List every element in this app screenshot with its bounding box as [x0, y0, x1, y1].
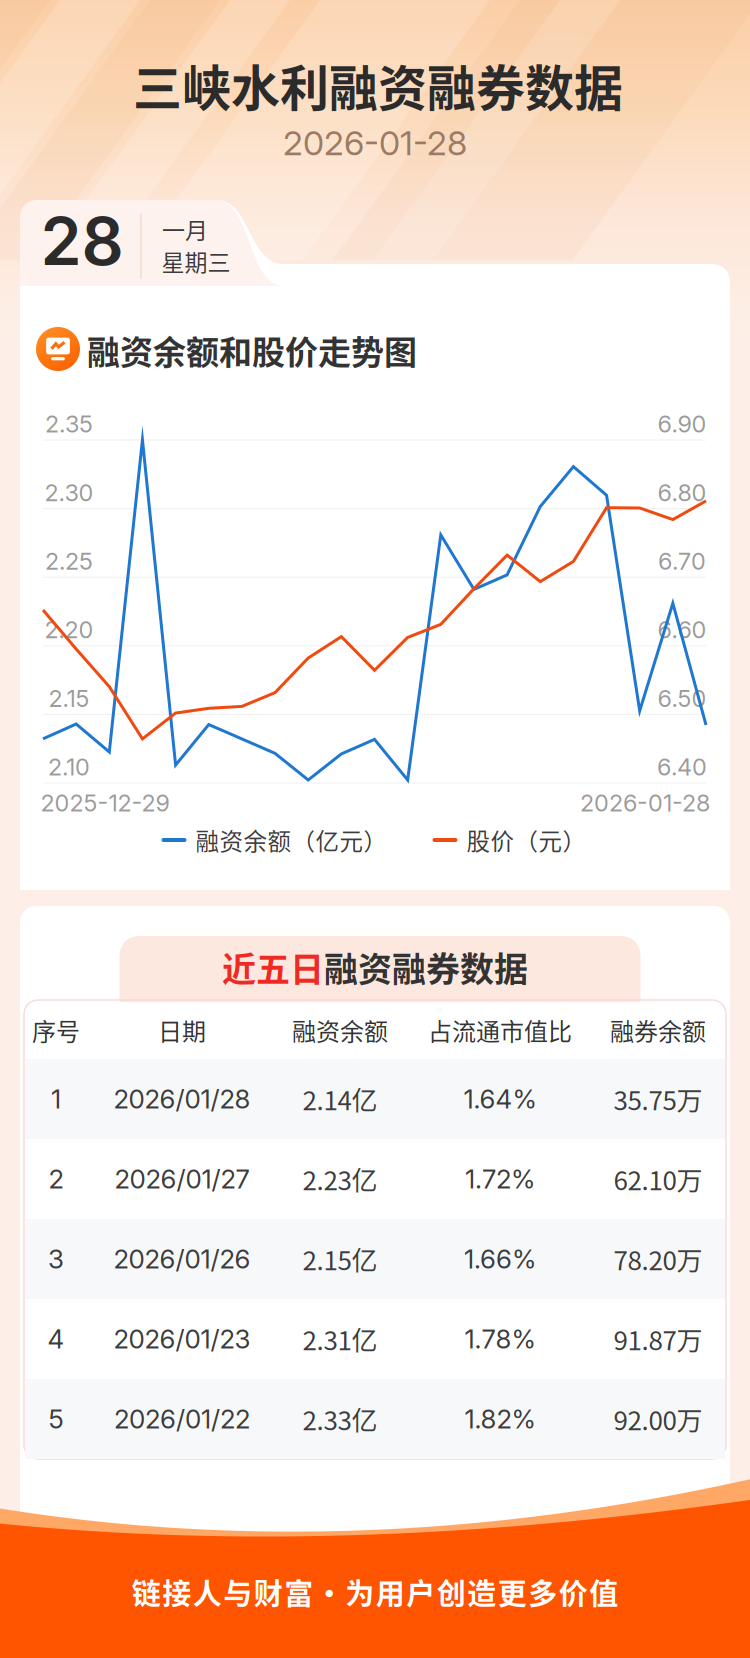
staticText: 5 [48, 1403, 63, 1435]
staticText: 35.75万 [613, 1080, 702, 1118]
staticText: 2.23亿 [302, 1160, 377, 1198]
staticText: 78.20万 [613, 1240, 702, 1278]
staticText: 股价（元） [466, 823, 586, 857]
staticText: 2026/01/23 [113, 1323, 250, 1355]
staticText: 融资融券数据 [324, 942, 528, 992]
staticText: 2.25 [45, 547, 93, 575]
staticText: 2025-12-29 [40, 789, 169, 817]
staticText: 1.78% [464, 1323, 535, 1355]
staticText: 2.33亿 [302, 1400, 377, 1438]
staticText: 2.14亿 [302, 1080, 377, 1118]
staticText: 三峡水利融资融券数据 [133, 49, 623, 120]
staticText: 2.31亿 [302, 1320, 377, 1358]
staticText: 2.15 [48, 684, 89, 713]
staticText: 1.66% [464, 1243, 536, 1275]
staticText: 3 [48, 1243, 64, 1275]
staticText: 1.64% [463, 1083, 536, 1115]
staticText: 6.60 [657, 616, 706, 644]
staticText: 28 [40, 201, 123, 281]
staticText: 一月 [162, 212, 208, 246]
staticText: 融券余额 [610, 1013, 706, 1047]
staticText: 占流通市值比 [428, 1013, 572, 1047]
staticText: 4 [47, 1323, 64, 1355]
staticText: 序号 [32, 1013, 80, 1047]
staticText: 2026-01-28 [283, 122, 467, 163]
staticText: 日期 [158, 1013, 206, 1047]
staticText: 1.72% [465, 1163, 535, 1195]
staticText: 92.00万 [613, 1400, 702, 1438]
staticText: 6.70 [658, 547, 706, 575]
staticText: 2.15亿 [302, 1240, 377, 1278]
staticText: 1.82% [464, 1403, 535, 1435]
staticText: 2.30 [44, 478, 93, 507]
staticText: 融资余额 [292, 1013, 388, 1047]
staticText: 91.87万 [613, 1320, 702, 1358]
staticText: 星期三 [161, 244, 230, 278]
staticText: 62.10万 [613, 1160, 702, 1198]
staticText: 2026/01/26 [113, 1243, 250, 1275]
staticText: 2026/01/27 [114, 1163, 249, 1195]
staticText: 6.80 [657, 478, 706, 507]
staticText: 6.90 [657, 410, 706, 438]
staticText: 6.50 [657, 684, 706, 713]
staticText: 2026/01/22 [114, 1403, 250, 1435]
staticText: 2.10 [48, 753, 90, 781]
staticText: 2.35 [45, 410, 93, 438]
staticText: 融资余额（亿元） [195, 823, 387, 857]
staticText: 2026/01/28 [113, 1083, 250, 1115]
staticText: 2 [48, 1163, 63, 1195]
staticText: 近五日 [222, 942, 324, 992]
staticText: 融资余额和股价走势图 [87, 326, 417, 374]
staticText: 6.40 [657, 753, 707, 781]
staticText: 2.20 [44, 616, 93, 644]
staticText: 1 [51, 1083, 61, 1115]
staticText: 链接人与财富·为用户创造更多价值 [132, 1571, 618, 1613]
staticText: 2026-01-28 [580, 789, 710, 817]
